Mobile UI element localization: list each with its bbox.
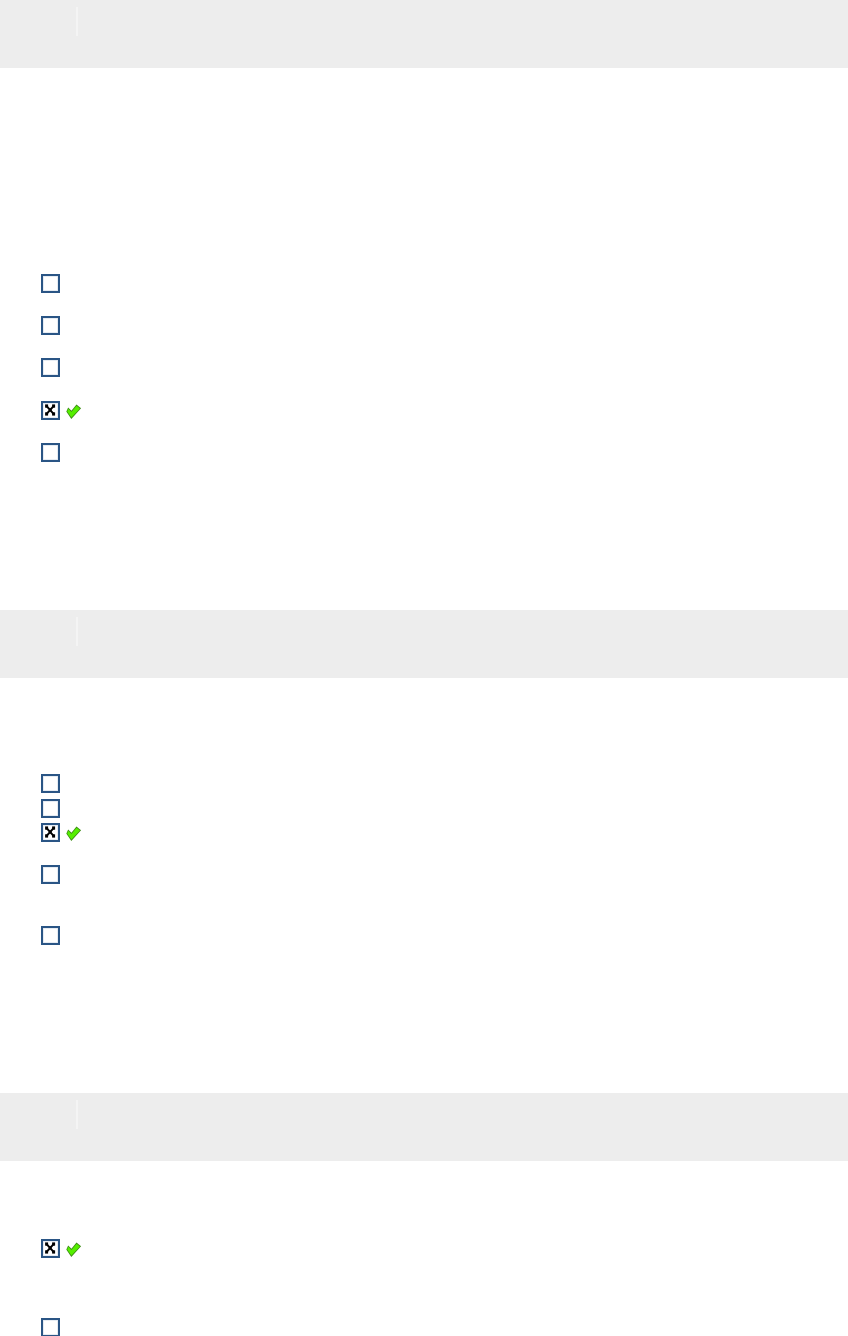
button[interactable]: Answer checkbox, not selected (41, 358, 60, 377)
button[interactable]: Answer checkbox, not selected (41, 443, 60, 462)
button[interactable]: Answer checkbox, not selected (41, 316, 60, 335)
button[interactable]: Answer checkbox, not selected (41, 926, 60, 945)
button[interactable]: Answer checkbox, not selected (41, 274, 60, 293)
other: Correct answer (66, 826, 84, 844)
button[interactable]: Answer checkbox, selected (41, 401, 60, 420)
button[interactable]: Answer checkbox, not selected (41, 799, 60, 818)
button[interactable]: Answer checkbox, selected (41, 823, 60, 842)
button[interactable]: Answer checkbox, not selected (41, 1318, 60, 1336)
button[interactable]: Answer checkbox, not selected (41, 865, 60, 884)
other: Correct answer (66, 1242, 84, 1260)
button[interactable]: Answer checkbox, selected (41, 1239, 60, 1258)
button[interactable]: Answer checkbox, not selected (41, 774, 60, 793)
other: Correct answer (66, 404, 84, 422)
